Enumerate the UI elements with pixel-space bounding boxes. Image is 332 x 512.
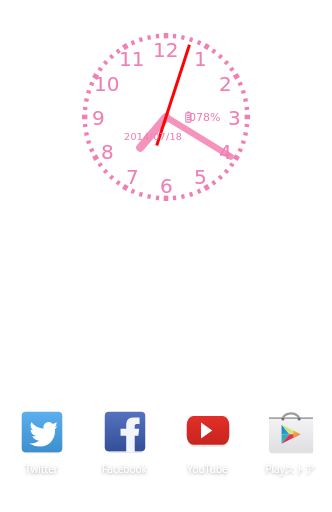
staticText: 1 xyxy=(194,47,207,70)
staticText: 3 xyxy=(228,106,241,129)
button[interactable]: YouTube xyxy=(166,410,249,476)
staticText: YouTube xyxy=(187,462,228,476)
button[interactable]: Playストア xyxy=(249,410,332,476)
staticText: 7 xyxy=(126,165,139,188)
staticText: 2 xyxy=(219,72,232,95)
button[interactable]: Facebook xyxy=(83,410,166,476)
staticText: 11 xyxy=(119,47,145,70)
staticText: 9 xyxy=(92,106,105,129)
staticText: 078% xyxy=(189,111,221,124)
staticText: 8 xyxy=(101,140,114,163)
staticText: Facebook xyxy=(102,462,147,476)
staticText: 6 xyxy=(160,174,173,197)
staticText: Twitter xyxy=(25,462,58,476)
staticText: 5 xyxy=(194,165,207,188)
staticText: 4 xyxy=(219,140,232,163)
other: Analog clock xyxy=(0,0,332,512)
staticText: Playストア xyxy=(265,462,316,476)
staticText: 10 xyxy=(94,72,120,95)
staticText: 2014/07/18 xyxy=(124,131,183,142)
button[interactable]: Twitter xyxy=(0,410,83,476)
staticText: 12 xyxy=(153,38,179,61)
